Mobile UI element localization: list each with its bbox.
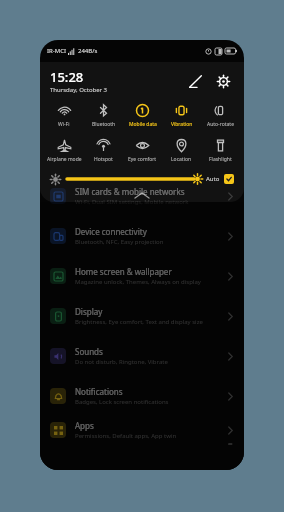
staticText: Permissions, Default apps, App twin xyxy=(75,432,177,440)
staticText: Auto xyxy=(206,175,220,183)
staticText: Mobile data xyxy=(129,121,157,128)
button[interactable]: Display xyxy=(40,296,244,336)
staticText: Display xyxy=(75,306,103,317)
staticText: Hotspot xyxy=(94,156,113,163)
staticText: Flashlight xyxy=(209,156,232,163)
staticText: Wi-Fi, Dual SIM settings, Mobile network xyxy=(75,198,189,206)
staticText: Brightness, Eye comfort, Text and displa… xyxy=(75,318,203,326)
staticText: Thursday, October 3 xyxy=(50,86,108,94)
button[interactable]: Bluetooth xyxy=(84,100,123,131)
staticText: Eye comfort xyxy=(128,156,157,163)
button[interactable]: Flashlight xyxy=(201,135,240,166)
button[interactable]: Eye comfort xyxy=(123,135,162,166)
staticText: Sounds xyxy=(75,346,103,357)
staticText: Airplane mode xyxy=(47,156,82,163)
staticText: Apps xyxy=(75,420,94,431)
button[interactable]: Brightness xyxy=(67,172,200,186)
button[interactable]: Airplane mode xyxy=(44,135,84,166)
button[interactable]: Sounds xyxy=(40,336,244,376)
staticText: Home screen & wallpaper xyxy=(75,266,172,277)
staticText: Badges, Lock screen notifications xyxy=(75,398,169,406)
button[interactable]: SIM cards & mobile networks xyxy=(40,176,244,216)
button[interactable]: Wi-Fi xyxy=(44,100,84,131)
button[interactable]: Settings xyxy=(212,70,234,92)
button[interactable]: Home screen & wallpaper xyxy=(40,256,244,296)
button[interactable]: Edit xyxy=(184,70,206,92)
staticText: Bluetooth, NFC, Easy projection xyxy=(75,238,164,246)
staticText: SIM cards & mobile networks xyxy=(75,186,185,197)
staticText: Location xyxy=(171,156,192,163)
button[interactable]: Vibration xyxy=(162,100,201,131)
staticText: Wi-Fi xyxy=(58,121,70,128)
staticText: Vibration xyxy=(171,121,193,128)
staticText: 244B/s xyxy=(78,47,98,55)
button[interactable]: Auto brightness xyxy=(224,174,234,184)
staticText: Bluetooth xyxy=(92,121,116,128)
button[interactable]: Device connectivity xyxy=(40,216,244,256)
button[interactable]: Apps xyxy=(40,416,244,444)
button[interactable]: Auto-rotate xyxy=(201,100,240,131)
button[interactable]: Mobile data xyxy=(123,100,162,131)
button[interactable]: Notifications xyxy=(40,376,244,416)
button[interactable]: Location xyxy=(162,135,201,166)
button[interactable]: Hotspot xyxy=(84,135,123,166)
staticText: Notifications xyxy=(75,386,123,397)
staticText: Magazine unlock, Themes, Always on displ… xyxy=(75,278,201,286)
staticText: 15:28 xyxy=(50,68,84,86)
staticText: IR-MCI xyxy=(47,47,66,55)
staticText: Do not disturb, Ringtone, Vibrate xyxy=(75,358,168,366)
staticText: Device connectivity xyxy=(75,226,147,237)
staticText: Auto-rotate xyxy=(207,121,234,128)
